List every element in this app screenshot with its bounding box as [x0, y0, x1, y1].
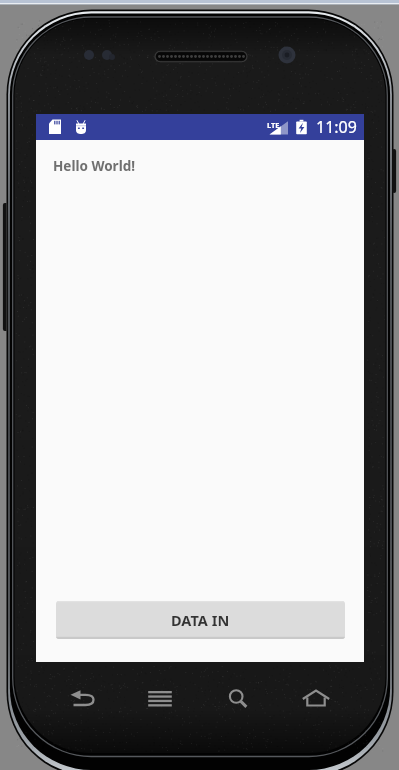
- button[interactable]: Search: [199, 680, 277, 716]
- button[interactable]: Menu: [121, 680, 199, 716]
- staticText: 11:09: [316, 116, 357, 138]
- button[interactable]: DATA IN: [56, 601, 345, 639]
- staticText: DATA IN: [171, 610, 230, 630]
- button[interactable]: Back: [44, 680, 121, 716]
- staticText: Hello World!: [53, 157, 135, 175]
- staticText: LTE: [267, 120, 280, 130]
- button[interactable]: Home: [277, 680, 355, 716]
